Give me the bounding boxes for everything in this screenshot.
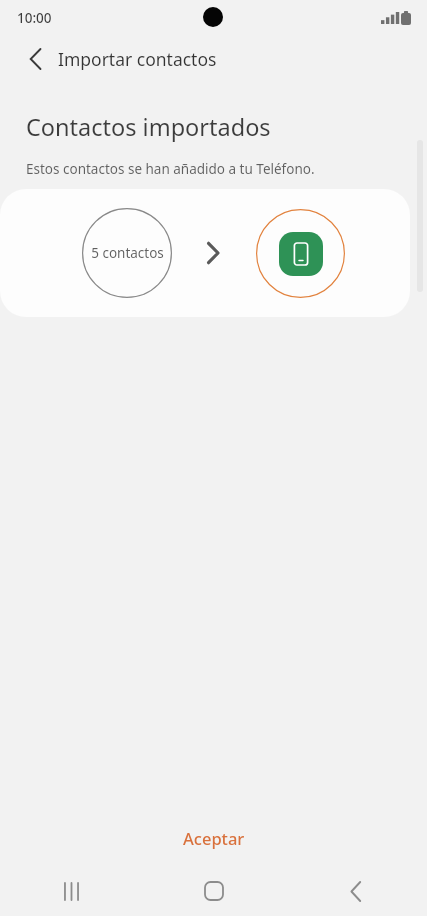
staticText: 10:00 xyxy=(17,9,52,27)
button[interactable]: Atrás xyxy=(17,40,55,78)
button[interactable]: 5 contactos xyxy=(0,189,410,317)
staticText: Estos contactos se han añadido a tu Telé… xyxy=(26,160,315,178)
button[interactable]: Recientes xyxy=(0,866,143,916)
staticText: Importar contactos xyxy=(58,47,217,71)
staticText: Contactos importados xyxy=(26,111,271,143)
button[interactable]: Atrás xyxy=(285,866,427,916)
staticText: Aceptar xyxy=(183,827,245,849)
button[interactable]: Inicio xyxy=(143,866,285,916)
staticText: 5 contactos xyxy=(91,244,164,262)
button[interactable]: Aceptar xyxy=(0,814,427,862)
